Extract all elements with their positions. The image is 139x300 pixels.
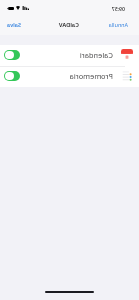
button[interactable]: Promemoria (0, 66, 139, 87)
button[interactable]: Annulla (108, 21, 128, 28)
button[interactable]: Salva (6, 21, 21, 28)
staticText: Promemoria (69, 71, 113, 81)
button[interactable]: Calendari (0, 45, 139, 66)
staticText: Calendari (79, 50, 113, 60)
staticText: 09:57 (111, 5, 125, 12)
staticText: Salva (6, 21, 21, 28)
button[interactable]: Calendari (4, 50, 20, 60)
staticText: Annulla (108, 21, 128, 28)
staticText: CalDAV (58, 21, 79, 29)
button[interactable]: Promemoria (4, 71, 20, 81)
